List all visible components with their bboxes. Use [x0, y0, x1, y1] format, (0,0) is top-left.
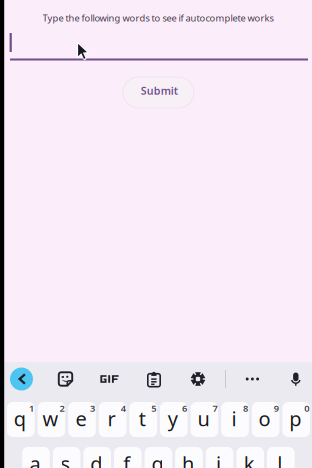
button[interactable]: r: [99, 402, 126, 437]
staticText: 6: [182, 402, 187, 414]
staticText: o: [259, 405, 271, 432]
staticText: p: [289, 405, 301, 432]
button[interactable]: y: [160, 402, 188, 437]
staticText: 3: [90, 402, 95, 414]
staticText: 9: [274, 402, 279, 414]
button[interactable]: t: [129, 402, 157, 437]
staticText: q: [14, 405, 26, 432]
staticText: 5: [151, 402, 156, 414]
staticText: u: [197, 405, 209, 432]
button[interactable]: e: [68, 402, 96, 437]
staticText: 0: [304, 402, 309, 414]
staticText: d: [90, 450, 102, 468]
button[interactable]: s: [53, 447, 80, 468]
staticText: i: [231, 405, 236, 432]
button[interactable]: Stickers: [50, 363, 80, 395]
button[interactable]: q: [7, 402, 35, 437]
button[interactable]: a: [22, 447, 50, 468]
staticText: l: [277, 450, 282, 468]
staticText: Submit: [141, 84, 178, 98]
staticText: 2: [59, 402, 64, 414]
button[interactable]: GIF: [94, 363, 124, 395]
staticText: 7: [212, 402, 217, 414]
button[interactable]: Voice input: [281, 363, 311, 395]
staticText: r: [108, 405, 116, 432]
button[interactable]: o: [252, 402, 279, 437]
button[interactable]: Back: [6, 364, 36, 394]
button[interactable]: i: [221, 402, 249, 437]
staticText: a: [29, 450, 40, 468]
staticText: h: [182, 450, 194, 468]
button[interactable]: k: [236, 447, 264, 468]
staticText: y: [168, 405, 178, 432]
staticText: g: [151, 450, 163, 468]
button[interactable]: Clipboard: [139, 363, 169, 395]
button[interactable]: h: [175, 447, 203, 468]
staticText: f: [123, 450, 130, 468]
staticText: 8: [243, 402, 248, 414]
staticText: e: [75, 405, 86, 432]
button[interactable]: l: [267, 447, 295, 468]
button[interactable]: More: [237, 363, 267, 395]
button[interactable]: w: [38, 402, 65, 437]
button[interactable]: Settings: [183, 363, 213, 395]
staticText: w: [42, 405, 58, 432]
staticText: t: [139, 405, 146, 432]
staticText: Type the following words to see if autoc…: [42, 12, 273, 24]
button[interactable]: u: [191, 402, 218, 437]
staticText: 1: [29, 402, 34, 414]
button[interactable]: j: [206, 447, 233, 468]
staticText: j: [216, 450, 221, 468]
staticText: 4: [121, 402, 126, 414]
button[interactable]: p: [282, 402, 310, 437]
button[interactable]: Submit: [123, 77, 194, 108]
button[interactable]: d: [83, 447, 111, 468]
staticText: k: [244, 450, 255, 468]
button[interactable]: g: [145, 447, 172, 468]
button[interactable]: f: [114, 447, 142, 468]
staticText: s: [61, 450, 71, 468]
